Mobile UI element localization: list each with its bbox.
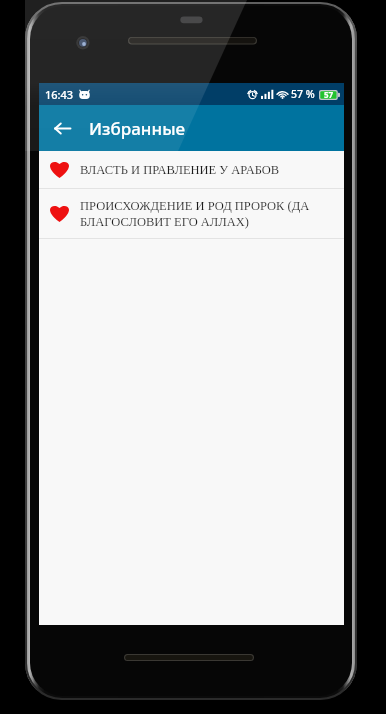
staticText: Избранные [89, 117, 186, 140]
button[interactable]: Назад [45, 111, 79, 145]
staticText: ВЛАСТЬ И ПРАВЛЕНИЕ У АРАБОВ [80, 163, 280, 177]
button[interactable]: ПРОИСХОЖДЕНИЕ И РОД ПРОРОК (ДА БЛАГОСЛОВ… [39, 189, 344, 239]
staticText: 57 % [291, 87, 315, 101]
staticText: 16:43 [45, 87, 74, 102]
button[interactable]: ВЛАСТЬ И ПРАВЛЕНИЕ У АРАБОВ [39, 151, 344, 189]
staticText: ПРОИСХОЖДЕНИЕ И РОД ПРОРОК (ДА БЛАГОСЛОВ… [80, 199, 334, 228]
staticText: 57 [324, 89, 334, 100]
